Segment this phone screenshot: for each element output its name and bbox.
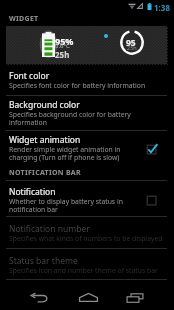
button[interactable]: Home (68, 285, 108, 310)
button[interactable]: Notification number (0, 217, 174, 248)
button[interactable]: Background color (0, 96, 174, 130)
staticText: WIDGET (9, 14, 39, 24)
button[interactable]: Status bar theme (0, 249, 174, 279)
staticText: notification bar (9, 205, 58, 214)
staticText: 95% (55, 35, 74, 47)
staticText: Whether to display battery status in (9, 197, 123, 206)
staticText: 0.6°C (55, 42, 70, 50)
staticText: NOTIFICATION BAR (9, 168, 81, 178)
staticText: Specifies icon and number theme of statu… (9, 266, 158, 275)
staticText: Status bar theme (9, 255, 78, 267)
button[interactable]: Notification (0, 181, 174, 216)
staticText: 25h (127, 44, 137, 51)
button[interactable]: Checked (141, 141, 163, 159)
button[interactable]: Font color (0, 64, 174, 95)
staticText: Specifies what kinds of numbers to be di… (9, 234, 163, 243)
staticText: Widget animation (9, 134, 81, 146)
staticText: Render simple widget animation in (9, 145, 121, 154)
staticText: 25h (55, 49, 70, 60)
staticText: Notification (9, 186, 56, 198)
staticText: Specifies background color for battery (9, 110, 131, 119)
button[interactable]: Back (19, 285, 59, 310)
staticText: charging (Turn off if phone is slow) (9, 153, 120, 162)
staticText: information (9, 118, 47, 127)
button[interactable]: Recent apps (115, 285, 155, 310)
staticText: Specifies font color for battery informa… (9, 81, 146, 90)
staticText: Background color (9, 99, 80, 111)
staticText: Font color (9, 70, 50, 82)
staticText: 95 (126, 37, 136, 49)
staticText: 1:38 (154, 2, 170, 13)
staticText: Notification number (9, 223, 90, 235)
button[interactable]: Unchecked (141, 192, 163, 210)
button[interactable]: Widget animation (0, 131, 174, 165)
